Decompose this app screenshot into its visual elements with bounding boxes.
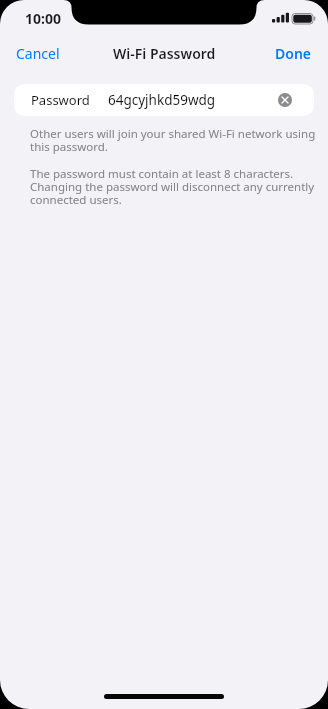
staticText: 10:00 [25,9,61,28]
staticText: The password must contain at least 8 cha… [30,166,315,208]
button[interactable] [278,93,292,107]
button[interactable]: Password [14,84,314,116]
button[interactable]: Cancel [0,44,60,63]
staticText: Wi-Fi Password [113,44,216,63]
staticText: Other users will join your shared Wi-Fi … [30,126,316,155]
staticText: Password [31,91,90,109]
staticText: 64gcyjhkd59wdg [108,91,216,109]
button[interactable]: Done [275,44,328,63]
